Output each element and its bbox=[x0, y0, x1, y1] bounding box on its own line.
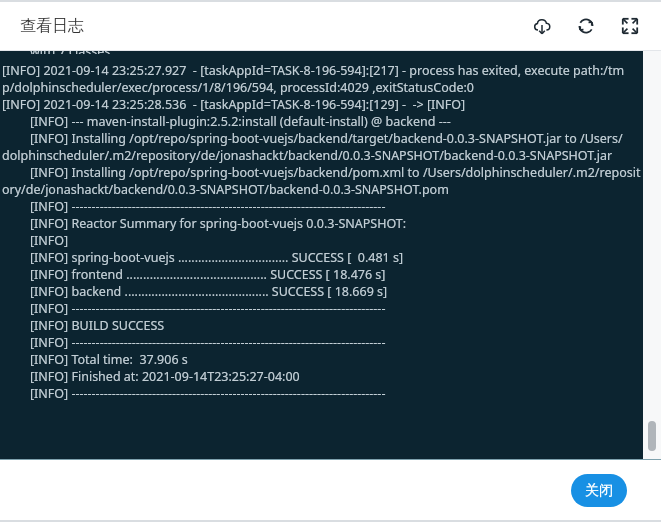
button[interactable]: 关闭 bbox=[571, 474, 627, 507]
staticText: [INFO] Finished at: 2021-09-14T23:25:27-… bbox=[30, 368, 641, 385]
staticText: [INFO] Reactor Summary for spring-boot-v… bbox=[30, 215, 641, 232]
staticText: [INFO] BUILD SUCCESS bbox=[30, 317, 641, 334]
staticText: [INFO] Total time: 37.906 s bbox=[30, 351, 641, 368]
staticText: 关闭 bbox=[585, 482, 613, 500]
staticText: p/dolphinscheduler/exec/process/1/8/196/… bbox=[2, 79, 641, 96]
staticText: [INFO] ---------------------------------… bbox=[30, 334, 641, 351]
button[interactable]: Download log bbox=[529, 13, 555, 39]
staticText: [INFO] bbox=[30, 232, 641, 249]
staticText: [INFO] backend .........................… bbox=[30, 283, 641, 300]
staticText: 查看日志 bbox=[20, 16, 84, 36]
staticText: with 7 classes bbox=[30, 51, 641, 54]
staticText: [INFO] ---------------------------------… bbox=[30, 198, 641, 215]
staticText: [INFO] Installing /opt/repo/spring-boot-… bbox=[30, 130, 641, 147]
staticText: [INFO] 2021-09-14 23:25:27.927 - [taskAp… bbox=[2, 62, 641, 79]
staticText: [INFO] 2021-09-14 23:25:28.536 - [taskAp… bbox=[2, 96, 641, 113]
staticText: ory/de/jonashackt/backend/0.0.3-SNAPSHOT… bbox=[2, 181, 641, 198]
button[interactable]: Refresh bbox=[573, 13, 599, 39]
staticText: [INFO] ---------------------------------… bbox=[30, 385, 641, 402]
staticText: [INFO] spring-boot-vuejs ...............… bbox=[30, 249, 641, 266]
staticText: dolphinscheduler/.m2/repository/de/jonas… bbox=[2, 147, 641, 164]
staticText: [INFO] frontend ........................… bbox=[30, 266, 641, 283]
staticText: [INFO] --- maven-install-plugin:2.5.2:in… bbox=[30, 113, 641, 130]
staticText: [INFO] ---------------------------------… bbox=[30, 300, 641, 317]
button[interactable]: Fullscreen bbox=[617, 13, 643, 39]
staticText: [INFO] Installing /opt/repo/spring-boot-… bbox=[30, 164, 641, 181]
